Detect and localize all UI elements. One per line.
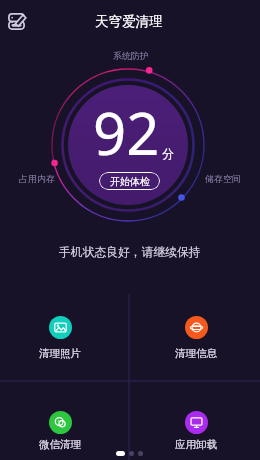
button[interactable]: 清理照片 xyxy=(12,316,108,360)
staticText: 储存空间 xyxy=(205,173,241,184)
button[interactable]: 开始体检 xyxy=(99,172,160,190)
staticText: 清理照片 xyxy=(39,347,81,360)
staticText: 92 xyxy=(93,93,160,172)
staticText: 清理信息 xyxy=(175,347,217,360)
staticText: 天穹爱清理 xyxy=(95,13,163,30)
button[interactable]: 微信清理 xyxy=(12,411,108,451)
staticText: 系统防护 xyxy=(113,50,149,61)
button[interactable]: 应用卸载 xyxy=(148,411,244,451)
button[interactable]: 清理信息 xyxy=(148,316,244,360)
staticText: 占用内存 xyxy=(19,173,55,184)
staticText: 开始体检 xyxy=(110,175,150,188)
staticText: 分 xyxy=(162,146,174,161)
button[interactable]: Feedback xyxy=(3,8,29,34)
staticText: 微信清理 xyxy=(39,438,81,451)
staticText: 手机状态良好，请继续保持 xyxy=(59,245,201,260)
staticText: 应用卸载 xyxy=(175,438,217,451)
